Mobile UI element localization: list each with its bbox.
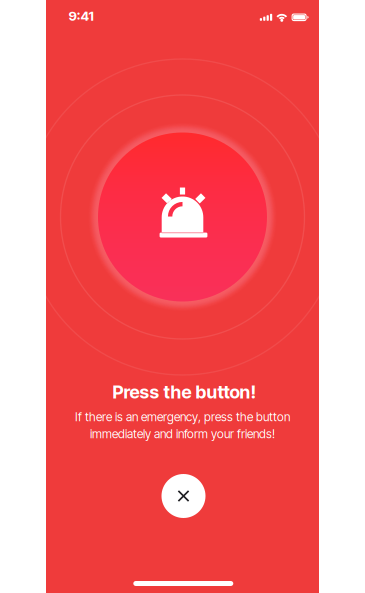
staticText: If there is an emergency, press the butt…	[75, 410, 290, 424]
staticText: 9:41	[68, 8, 93, 24]
button[interactable]: Send emergency alert	[87, 122, 277, 312]
staticText: Press the button!	[112, 381, 256, 403]
button[interactable]: Close	[161, 474, 205, 518]
staticText: immediately and inform your friends!	[90, 427, 275, 441]
